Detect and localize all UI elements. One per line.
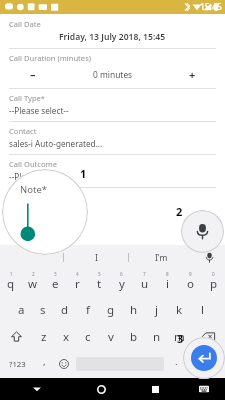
staticText: 1: [80, 166, 87, 181]
button[interactable]: Shift: [0, 323, 33, 350]
button[interactable]: Recents: [128, 378, 182, 400]
button[interactable]: [0, 202, 225, 232]
button[interactable]: --Please select--: [0, 103, 225, 121]
button[interactable]: a: [10, 296, 32, 323]
staticText: v: [108, 329, 114, 345]
staticText: ,: [43, 355, 46, 368]
button[interactable]: 0: [202, 269, 225, 296]
button[interactable]: 4: [66, 269, 88, 296]
staticText: k: [176, 302, 183, 318]
staticText: Call Type*: [9, 93, 46, 103]
button[interactable]: Enter: [186, 350, 225, 378]
button[interactable]: --Please select--: [0, 169, 225, 187]
staticText: 4: [76, 271, 79, 277]
staticText: I: [95, 252, 98, 263]
staticText: ?123: [9, 359, 26, 370]
staticText: n: [153, 329, 161, 345]
staticText: x: [63, 329, 70, 345]
button[interactable]: j: [145, 296, 168, 323]
staticText: Contact: [9, 126, 37, 136]
staticText: r: [75, 276, 80, 292]
button[interactable]: I'm: [129, 245, 193, 269]
button[interactable]: ?123: [0, 350, 34, 378]
staticText: 9: [189, 271, 192, 277]
button[interactable]: k: [168, 296, 191, 323]
staticText: w: [28, 276, 38, 292]
button[interactable]: Increase duration: [159, 67, 225, 82]
button[interactable]: Home: [74, 378, 128, 400]
staticText: g: [107, 302, 115, 318]
button[interactable]: d: [54, 296, 76, 323]
button[interactable]: 8: [156, 269, 179, 296]
button[interactable]: ,: [34, 350, 54, 378]
staticText: 3: [177, 331, 184, 346]
button[interactable]: z: [33, 323, 55, 350]
button[interactable]: Switch keyboard: [182, 378, 225, 400]
staticText: 0 minutes: [93, 69, 133, 80]
button[interactable]: sales-i Auto-generated...: [0, 136, 225, 154]
button[interactable]: f: [76, 296, 99, 323]
staticText: +: [189, 67, 196, 82]
staticText: 1: [10, 271, 13, 277]
staticText: c: [85, 329, 91, 345]
staticText: e: [52, 276, 59, 292]
staticText: j: [155, 302, 158, 318]
staticText: –: [30, 67, 36, 82]
button[interactable]: s: [32, 296, 54, 323]
button[interactable]: 3: [44, 269, 66, 296]
button[interactable]: 1: [0, 269, 22, 296]
staticText: 15:45: [200, 1, 222, 13]
staticText: z: [41, 329, 47, 345]
button[interactable]: g: [99, 296, 122, 323]
staticText: 2: [176, 204, 183, 219]
button[interactable]: Decrease duration: [0, 67, 66, 82]
button[interactable]: h: [122, 296, 145, 323]
button[interactable]: 9: [179, 269, 202, 296]
button[interactable]: 7: [133, 269, 156, 296]
button[interactable]: [0, 245, 63, 269]
staticText: Note*: [9, 192, 31, 202]
button[interactable]: Voice input: [193, 245, 225, 269]
staticText: Call Outcome: [9, 159, 57, 169]
button[interactable]: Backspace: [191, 323, 225, 350]
button[interactable]: Friday, 13 July 2018, 15:45: [0, 29, 225, 48]
staticText: sales-i Auto-generated...: [9, 138, 103, 149]
button[interactable]: Hide keyboard: [0, 378, 74, 400]
staticText: q: [7, 276, 15, 292]
staticText: s: [40, 302, 46, 318]
button[interactable]: 5: [88, 269, 110, 296]
button[interactable]: I: [64, 245, 128, 269]
staticText: u: [141, 276, 149, 292]
button[interactable]: v: [99, 323, 122, 350]
staticText: 2: [32, 271, 35, 277]
staticText: b: [130, 329, 138, 345]
button[interactable]: n: [145, 323, 168, 350]
staticText: 0: [212, 271, 215, 277]
staticText: 3: [54, 271, 57, 277]
staticText: Call Duration (minutes): [9, 53, 92, 63]
staticText: I'm: [155, 252, 168, 263]
button[interactable]: 6: [110, 269, 133, 296]
button[interactable]: Enter: [191, 345, 217, 371]
button[interactable]: Emoji: [54, 350, 74, 378]
staticText: t: [97, 276, 102, 292]
staticText: y: [119, 276, 125, 292]
staticText: --Please select--: [9, 105, 69, 116]
staticText: 8: [166, 271, 169, 277]
staticText: i: [166, 276, 169, 292]
button[interactable]: .: [166, 350, 186, 378]
staticText: m: [174, 329, 185, 345]
staticText: .: [175, 355, 178, 368]
staticText: l: [201, 302, 204, 318]
staticText: --Please select--: [9, 171, 69, 182]
staticText: o: [187, 276, 194, 292]
button[interactable]: l: [191, 296, 214, 323]
staticText: p: [210, 276, 218, 292]
button[interactable]: 2: [22, 269, 44, 296]
button[interactable]: m: [168, 323, 191, 350]
button[interactable]: x: [55, 323, 77, 350]
button[interactable]: c: [77, 323, 99, 350]
staticText: d: [61, 302, 69, 318]
button[interactable]: b: [122, 323, 145, 350]
